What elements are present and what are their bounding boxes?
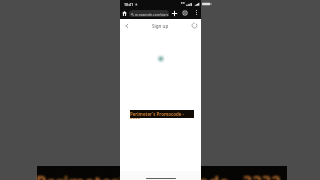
button[interactable]: More options <box>193 9 200 16</box>
button[interactable]: m.example.com/signup <box>129 10 169 17</box>
button[interactable]: Perimeter's Promocode - 3232 <box>130 110 194 118</box>
staticText: Perimeter's Promocode - 3232 <box>36 170 281 180</box>
staticText: 10:41 <box>124 2 134 7</box>
staticText: Sign up <box>152 23 169 29</box>
staticText: Perimeter's Promocode - 3232 <box>130 111 194 119</box>
button[interactable]: Home <box>121 10 128 17</box>
button[interactable]: Tabs <box>181 9 189 17</box>
button[interactable]: Back <box>122 21 131 30</box>
button[interactable]: Reload <box>190 21 199 30</box>
staticText: m.example.com/signup <box>135 12 169 16</box>
button[interactable]: New tab <box>170 9 178 17</box>
